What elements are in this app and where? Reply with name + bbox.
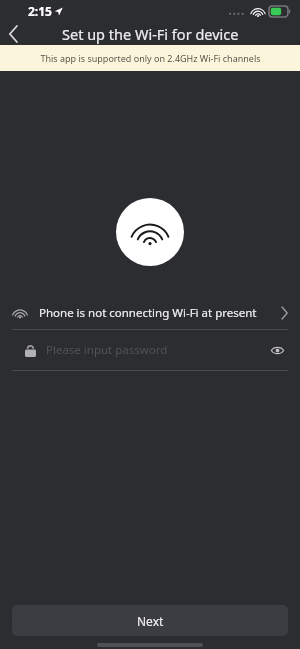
- button[interactable]: Please input password: [0, 330, 300, 370]
- staticText: Please input password: [46, 342, 266, 358]
- staticText: Next: [137, 613, 164, 629]
- button[interactable]: Back: [0, 22, 26, 45]
- button[interactable]: Next: [12, 605, 288, 636]
- staticText: This app is supported only on 2.4GHz Wi-…: [40, 52, 261, 64]
- button[interactable]: Phone is not connecting Wi-Fi at present: [0, 296, 300, 329]
- staticText: 2:15: [28, 3, 52, 19]
- button[interactable]: Show password: [266, 339, 288, 361]
- staticText: Set up the Wi-Fi for device: [62, 24, 239, 44]
- staticText: Phone is not connecting Wi-Fi at present: [39, 305, 281, 321]
